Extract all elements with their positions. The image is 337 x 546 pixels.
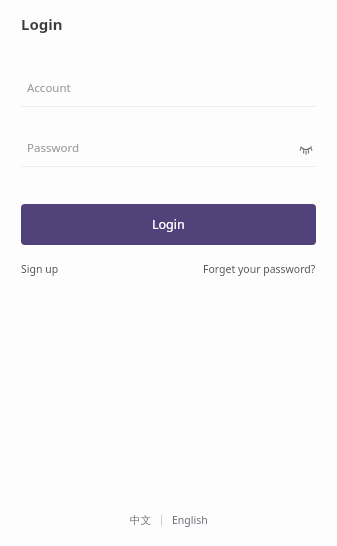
button[interactable]: Show password bbox=[296, 138, 316, 158]
button[interactable]: Login bbox=[21, 204, 316, 245]
staticText: Sign up bbox=[21, 262, 59, 276]
staticText: Forget your password? bbox=[203, 262, 316, 276]
staticText: English bbox=[172, 513, 208, 527]
staticText: 中文 bbox=[130, 514, 151, 527]
button[interactable]: English bbox=[168, 510, 212, 530]
staticText: Account bbox=[27, 80, 71, 96]
button[interactable]: Sign up bbox=[21, 260, 59, 278]
button[interactable]: Forget your password? bbox=[203, 260, 316, 278]
button[interactable]: 中文 bbox=[126, 511, 155, 530]
staticText: Login bbox=[152, 216, 185, 233]
staticText: Password bbox=[27, 140, 80, 156]
button[interactable]: Password bbox=[0, 137, 337, 167]
button[interactable]: Account bbox=[0, 77, 337, 107]
staticText: Login bbox=[21, 14, 63, 34]
